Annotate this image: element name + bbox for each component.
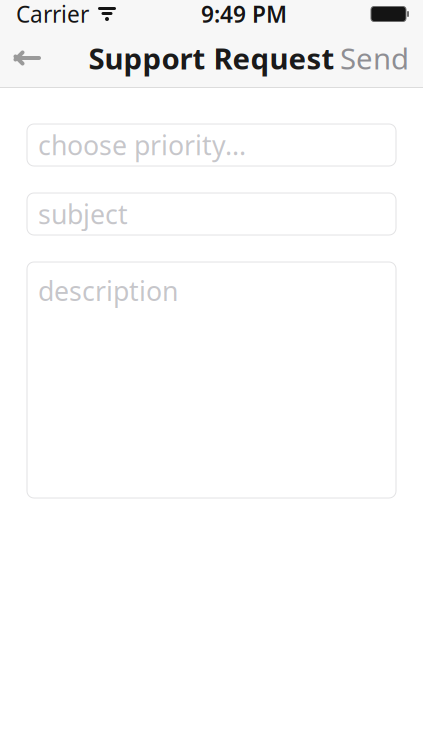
staticText: Support Request (88, 38, 334, 77)
button[interactable]: subject (27, 193, 396, 235)
button[interactable]: Send (326, 28, 423, 88)
button[interactable]: choose priority... (27, 124, 396, 166)
button[interactable]: Back (0, 28, 56, 88)
button[interactable]: description (27, 262, 396, 498)
staticText: choose priority... (38, 127, 246, 163)
staticText: Send (340, 38, 409, 77)
staticText: subject (38, 196, 128, 232)
staticText: description (38, 273, 178, 308)
staticText: Carrier (16, 0, 89, 29)
staticText: 9:49 PM (201, 0, 287, 29)
